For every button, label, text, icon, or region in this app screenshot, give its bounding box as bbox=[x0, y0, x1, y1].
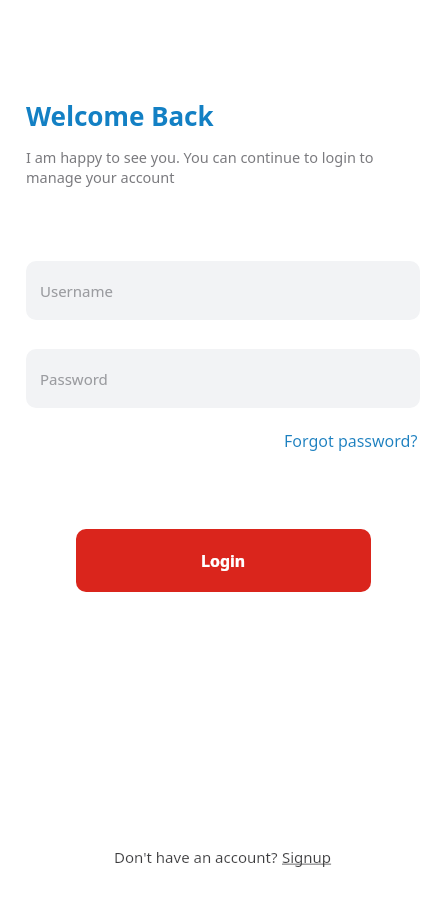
button[interactable]: Signup bbox=[282, 847, 332, 867]
button[interactable]: Login bbox=[76, 529, 371, 592]
staticText: Login bbox=[201, 550, 246, 572]
staticText: I am happy to see you. You can continue … bbox=[26, 147, 420, 188]
button[interactable]: Forgot password? bbox=[282, 428, 420, 454]
staticText: Username bbox=[40, 281, 113, 301]
button[interactable]: Username bbox=[26, 261, 420, 320]
staticText: Password bbox=[40, 369, 108, 389]
button[interactable]: Password bbox=[26, 349, 420, 408]
staticText: Signup bbox=[282, 847, 332, 867]
staticText: Don't have an account? bbox=[114, 847, 282, 867]
staticText: Forgot password? bbox=[284, 430, 418, 452]
staticText: Welcome Back bbox=[26, 98, 214, 133]
